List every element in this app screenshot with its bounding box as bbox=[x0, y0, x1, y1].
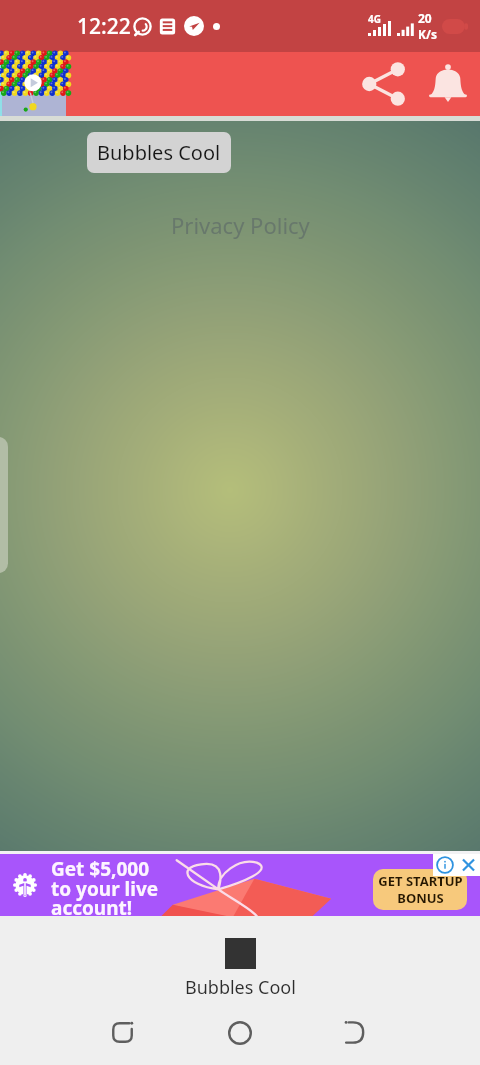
staticText: GET STARTUP BONUS bbox=[378, 872, 463, 907]
staticText: Bubbles Cool bbox=[185, 975, 296, 1000]
staticText: Bubbles Cool bbox=[97, 139, 221, 166]
button[interactable]: Bubbles Cool game preview bbox=[0, 52, 66, 116]
button[interactable]: GET STARTUP BONUS bbox=[373, 869, 467, 910]
button[interactable]: Open side panel bbox=[0, 437, 8, 573]
button[interactable]: Back bbox=[325, 1004, 382, 1061]
button[interactable]: Recents bbox=[94, 1004, 151, 1061]
button[interactable]: Home bbox=[211, 1004, 268, 1061]
button[interactable]: Privacy Policy bbox=[0, 209, 480, 241]
button[interactable]: Close ad bbox=[457, 854, 480, 876]
button[interactable]: Notifications bbox=[420, 52, 476, 116]
staticText: 20 bbox=[418, 10, 432, 26]
button[interactable]: Bubbles Cool bbox=[87, 132, 231, 173]
staticText: Get $5,000 to your live account! bbox=[51, 856, 159, 918]
staticText: K/s bbox=[418, 26, 437, 42]
staticText: 12:22 bbox=[77, 12, 131, 41]
staticText: 4G bbox=[368, 12, 381, 26]
staticText: Privacy Policy bbox=[171, 210, 310, 240]
button[interactable]: Advertisement: Get $5,000 to your live a… bbox=[0, 854, 480, 916]
button[interactable]: Share bbox=[356, 52, 412, 116]
